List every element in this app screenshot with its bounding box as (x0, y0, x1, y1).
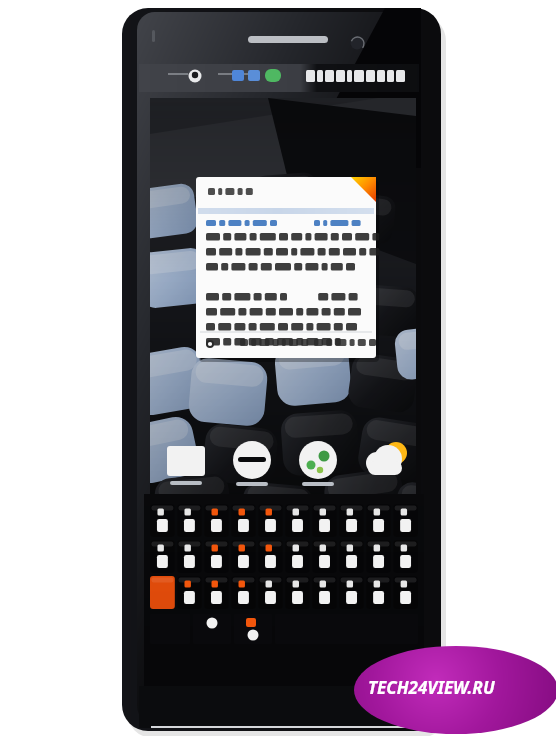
staticText: TECH24VIEW.RU (368, 676, 495, 699)
button[interactable]: Key (339, 576, 364, 609)
button[interactable]: Key (258, 540, 283, 573)
button[interactable]: Key (285, 540, 310, 573)
button[interactable]: Key (150, 576, 175, 609)
button[interactable]: Key (150, 540, 175, 573)
button[interactable]: Maps (296, 440, 340, 486)
button[interactable]: Key (366, 576, 391, 609)
button[interactable]: Key (204, 540, 229, 573)
button[interactable]: Key (339, 540, 364, 573)
button[interactable]: Key (366, 540, 391, 573)
button[interactable]: Key (339, 504, 364, 537)
button[interactable]: Key (177, 576, 202, 609)
button[interactable]: Messages (164, 440, 208, 486)
button[interactable]: Key (393, 576, 418, 609)
button[interactable]: Key (204, 504, 229, 537)
button[interactable]: Key (312, 504, 337, 537)
button[interactable]: Phone (230, 440, 274, 486)
button[interactable]: Key (366, 504, 391, 537)
button[interactable]: Key (177, 504, 202, 537)
button[interactable]: Key (285, 504, 310, 537)
button[interactable]: Key (258, 504, 283, 537)
button[interactable] (312, 334, 374, 354)
button[interactable]: Weather (363, 440, 407, 486)
button[interactable]: Key (204, 576, 229, 609)
button[interactable]: Key (258, 576, 283, 609)
button[interactable]: Options (202, 334, 232, 354)
button[interactable]: Key (150, 504, 175, 537)
button[interactable]: Key (393, 540, 418, 573)
button[interactable]: Key (312, 540, 337, 573)
button[interactable]: Key (231, 504, 256, 537)
button[interactable]: Key (231, 576, 256, 609)
button[interactable]: Key (285, 576, 310, 609)
button[interactable]: Key (312, 576, 337, 609)
button[interactable]: Key (177, 540, 202, 573)
button[interactable]: Key (231, 540, 256, 573)
button[interactable] (238, 334, 308, 354)
button[interactable]: Key (393, 504, 418, 537)
